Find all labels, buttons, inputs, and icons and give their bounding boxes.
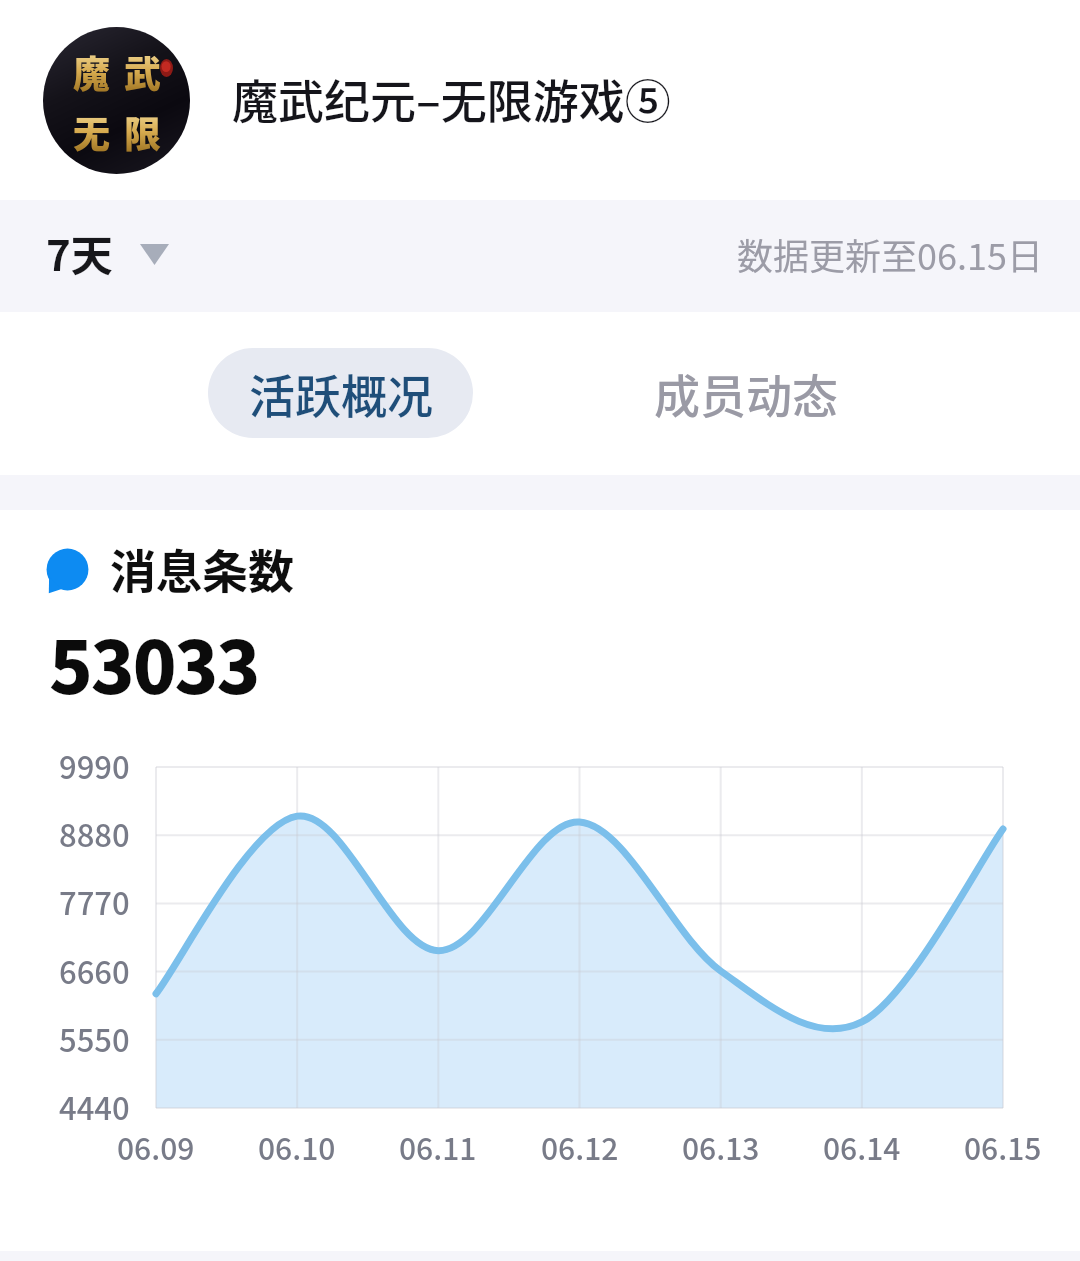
staticText: 9990 bbox=[59, 743, 130, 788]
staticText: 活跃概况 bbox=[249, 360, 433, 427]
staticText: 魔武纪元–无限游戏⑤ bbox=[232, 65, 671, 132]
staticText: 魔 bbox=[73, 45, 110, 99]
staticText: 限 bbox=[124, 105, 161, 159]
staticText: 消息条数 bbox=[110, 535, 294, 602]
other: Messages bbox=[45, 549, 90, 594]
button[interactable]: 魔 bbox=[0, 0, 1080, 200]
staticText: 武 bbox=[124, 45, 161, 99]
staticText: 8880 bbox=[59, 811, 130, 856]
button[interactable]: 活跃概况 bbox=[208, 348, 473, 438]
staticText: 5550 bbox=[59, 1016, 130, 1061]
staticText: 成员动态 bbox=[654, 360, 838, 427]
staticText: 06.10 bbox=[258, 1125, 336, 1168]
staticText: 53033 bbox=[49, 610, 259, 714]
staticText: 6660 bbox=[59, 948, 130, 993]
staticText: 4440 bbox=[59, 1084, 130, 1129]
staticText: 7天 bbox=[46, 222, 113, 283]
staticText: 06.09 bbox=[117, 1125, 195, 1168]
staticText: 06.12 bbox=[541, 1125, 619, 1168]
staticText: 无 bbox=[73, 105, 110, 159]
button[interactable]: 7天 bbox=[46, 222, 169, 283]
button[interactable]: 成员动态 bbox=[625, 348, 867, 438]
staticText: 数据更新至06.15日 bbox=[737, 228, 1043, 280]
staticText: 06.15 bbox=[964, 1125, 1042, 1168]
staticText: 7770 bbox=[59, 879, 130, 924]
staticText: 06.11 bbox=[399, 1125, 477, 1168]
staticText: 06.13 bbox=[682, 1125, 760, 1168]
staticText: 06.14 bbox=[823, 1125, 901, 1168]
